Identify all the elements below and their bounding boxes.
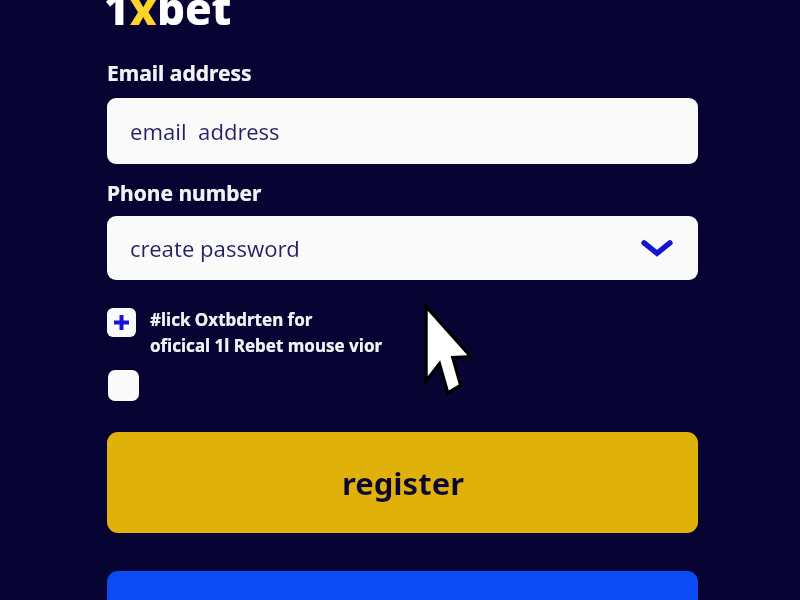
button[interactable]: register	[107, 432, 698, 533]
staticText: register	[342, 462, 464, 504]
button[interactable]: Login	[107, 571, 698, 600]
button[interactable]: create password	[107, 216, 698, 280]
staticText: #lick Oxtbdrten for	[150, 308, 313, 331]
staticText: oficical 1l Rebet mouse vior	[150, 334, 383, 357]
staticText: create password	[130, 233, 300, 263]
button[interactable]: #lick Oxtbdrten for	[107, 308, 383, 357]
other: Expand dropdown	[642, 239, 672, 257]
button[interactable]: email address	[107, 98, 698, 164]
button[interactable]: 1xbet logo	[104, 0, 232, 38]
staticText: x	[130, 0, 157, 38]
staticText: bet	[157, 0, 232, 38]
staticText: email address	[130, 116, 280, 146]
button[interactable]: Accept terms checkbox	[108, 370, 139, 401]
staticText: 1	[104, 0, 130, 38]
staticText: Email address	[107, 59, 252, 88]
staticText: Phone number	[107, 179, 262, 208]
